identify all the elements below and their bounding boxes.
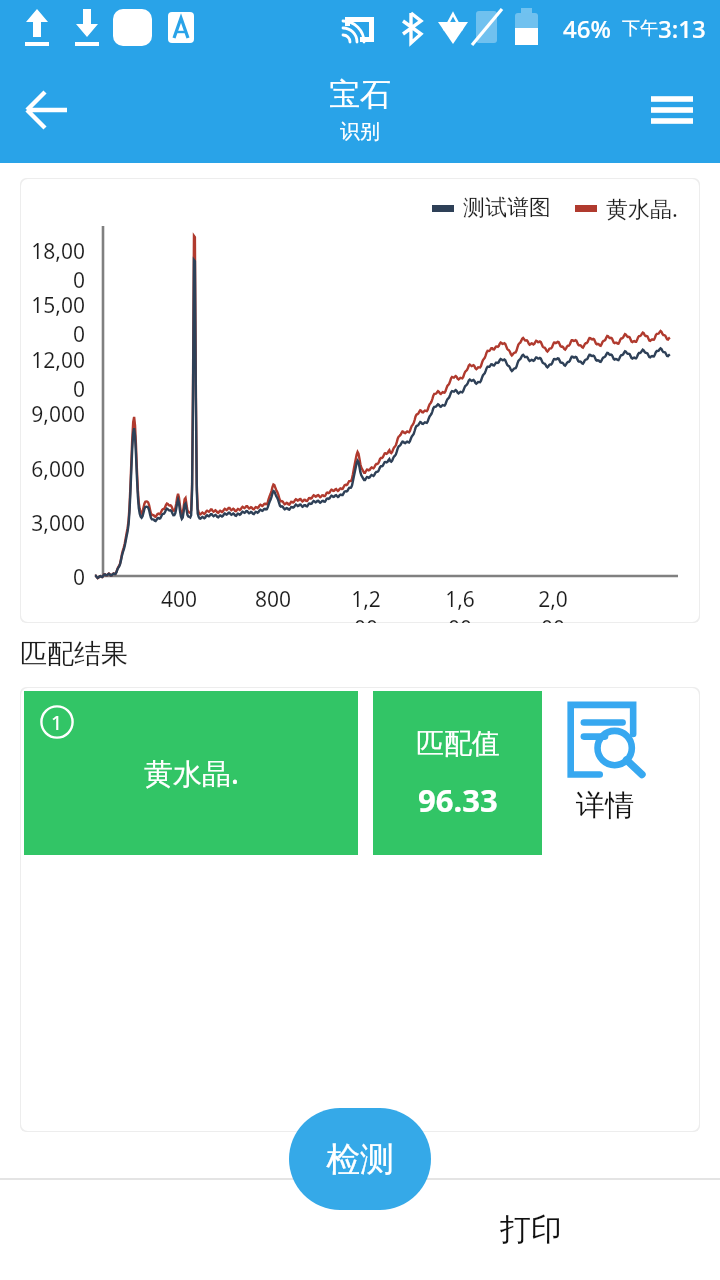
staticText: 匹配结果 bbox=[20, 637, 128, 671]
staticText: 1 bbox=[51, 709, 63, 736]
staticText: 识别 bbox=[340, 119, 380, 144]
staticText: 800 bbox=[253, 585, 293, 614]
button[interactable]: Details bbox=[542, 697, 667, 857]
other: Details bbox=[561, 697, 649, 785]
button[interactable]: 打印 bbox=[500, 1210, 562, 1249]
staticText: 6,000 bbox=[20, 455, 85, 484]
staticText: 3,000 bbox=[20, 509, 85, 538]
staticText: 下午 bbox=[622, 17, 658, 40]
staticText: 400 bbox=[159, 585, 199, 614]
staticText: 9,000 bbox=[20, 400, 85, 429]
staticText: 测试谱图 bbox=[463, 194, 551, 222]
button[interactable]: 检测 bbox=[289, 1108, 431, 1210]
staticText: 检测 bbox=[326, 1138, 394, 1181]
staticText: 15,000 bbox=[20, 291, 85, 349]
staticText: 黄水晶. bbox=[144, 753, 239, 793]
staticText: 详情 bbox=[576, 787, 634, 824]
staticText: 12,000 bbox=[20, 346, 85, 404]
staticText: 18,000 bbox=[20, 237, 85, 295]
button[interactable]: Back bbox=[8, 70, 88, 150]
staticText: 黄水晶. bbox=[606, 193, 678, 223]
staticText: 3:13 bbox=[658, 12, 706, 45]
staticText: 1,600 bbox=[440, 585, 480, 623]
button[interactable]: Menu bbox=[632, 70, 712, 150]
staticText: 匹配值 bbox=[416, 726, 500, 761]
button[interactable]: 1 bbox=[24, 691, 358, 855]
staticText: 96.33 bbox=[418, 779, 498, 821]
button[interactable]: 匹配值 bbox=[373, 691, 542, 855]
staticText: 46% bbox=[563, 12, 611, 45]
staticText: 0 bbox=[20, 563, 85, 592]
staticText: 宝石 bbox=[329, 75, 391, 114]
staticText: 1,200 bbox=[346, 585, 386, 623]
staticText: 2,000 bbox=[533, 585, 573, 623]
